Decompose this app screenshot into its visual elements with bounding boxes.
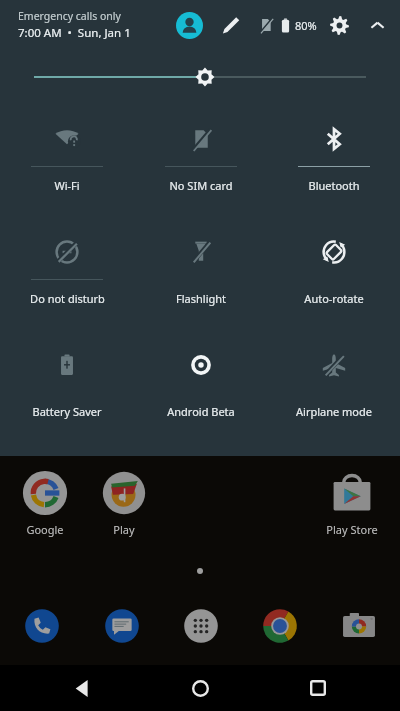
staticText: Play Store xyxy=(326,522,378,537)
staticText: 7:00 AM • Sun, Jan 1 xyxy=(18,25,131,41)
button[interactable]: All apps xyxy=(178,603,224,649)
staticText: Play xyxy=(113,522,135,537)
staticText: Battery Saver xyxy=(32,404,102,419)
button[interactable]: Airplane mode xyxy=(267,344,400,434)
button[interactable]: Messages xyxy=(99,603,145,649)
button[interactable]: Battery Saver xyxy=(0,344,134,434)
staticText: Emergency calls only xyxy=(18,9,121,23)
button[interactable]: Edit tiles xyxy=(219,14,241,36)
button[interactable]: Play Store xyxy=(315,470,389,537)
button[interactable]: Camera xyxy=(336,603,382,649)
button[interactable]: Auto-rotate xyxy=(267,231,400,321)
button[interactable]: Brightness xyxy=(34,62,366,92)
button[interactable]: Do not disturb xyxy=(0,231,134,321)
button[interactable]: Google xyxy=(16,470,74,537)
button[interactable]: Android Beta xyxy=(134,344,267,434)
staticText: Flashlight xyxy=(176,291,226,306)
staticText: Do not disturb xyxy=(30,291,105,306)
staticText: Android Beta xyxy=(167,404,235,419)
button[interactable]: Flashlight xyxy=(134,231,267,321)
button[interactable]: Home xyxy=(180,668,220,708)
button[interactable]: Chrome xyxy=(257,603,303,649)
staticText: 80% xyxy=(295,18,317,33)
staticText: Google xyxy=(26,522,64,537)
button[interactable]: Collapse xyxy=(366,14,388,36)
button[interactable]: Recents xyxy=(298,668,338,708)
button[interactable]: Wi-Fi xyxy=(0,118,134,208)
staticText: Wi-Fi xyxy=(54,178,80,193)
button[interactable]: Play xyxy=(95,470,153,537)
button[interactable]: Back xyxy=(62,668,102,708)
button[interactable]: User account xyxy=(176,12,203,39)
staticText: Auto-rotate xyxy=(304,291,364,306)
button[interactable]: Phone xyxy=(19,603,65,649)
button[interactable]: Bluetooth xyxy=(267,118,400,208)
staticText: No SIM card xyxy=(169,178,233,193)
button[interactable]: No SIM card xyxy=(134,118,267,208)
staticText: Airplane mode xyxy=(296,404,372,419)
button[interactable]: Settings xyxy=(328,14,350,36)
staticText: Bluetooth xyxy=(308,178,360,193)
